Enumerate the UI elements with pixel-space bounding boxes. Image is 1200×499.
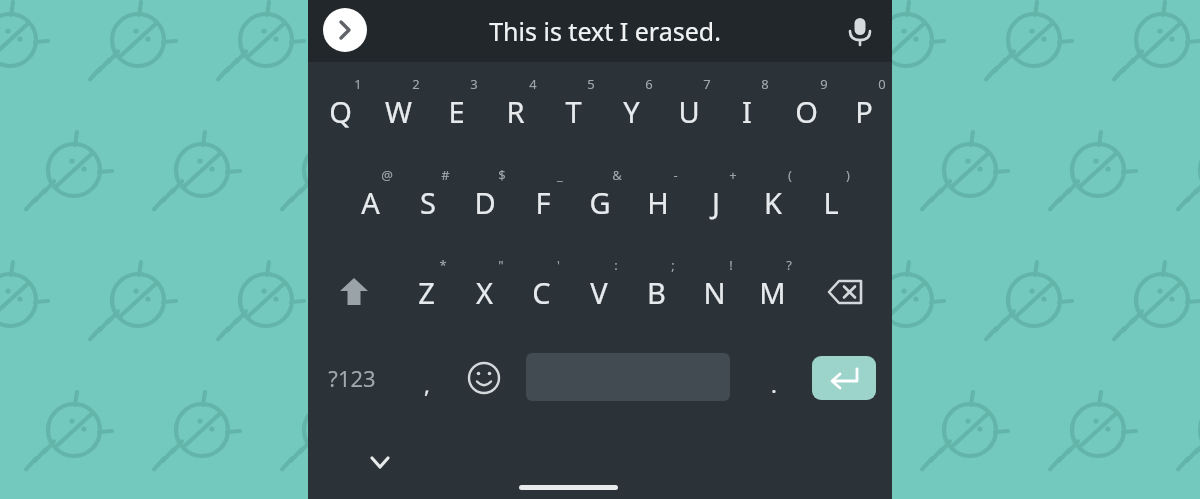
button[interactable]: L (791, 170, 871, 234)
button[interactable]: B (616, 260, 696, 324)
button[interactable]: 7 (667, 69, 747, 98)
button[interactable]: ! (691, 250, 771, 279)
staticText: L (823, 183, 839, 222)
staticText: C (532, 273, 551, 312)
staticText: A (361, 183, 380, 222)
button[interactable]: P (824, 79, 904, 143)
button[interactable]: : (576, 250, 656, 279)
staticText: + (729, 166, 737, 184)
staticText: E (448, 92, 465, 131)
button[interactable]: Expand suggestions (323, 8, 367, 52)
staticText: G (589, 183, 611, 222)
staticText: This is text I erased. (489, 14, 721, 48)
staticText: _ (557, 166, 563, 184)
staticText: 8 (761, 75, 769, 93)
button[interactable]: J (676, 170, 756, 234)
button[interactable]: Hide keyboard (358, 440, 402, 484)
button[interactable]: 3 (434, 69, 514, 98)
button[interactable]: Q (300, 79, 380, 143)
button[interactable]: 4 (493, 69, 573, 98)
button[interactable]: A (330, 170, 410, 234)
button[interactable]: ' (518, 250, 598, 279)
button[interactable]: O (766, 79, 846, 143)
button[interactable]: F (503, 170, 583, 234)
button[interactable]: Enter (812, 356, 876, 400)
button[interactable]: - (635, 160, 715, 189)
button[interactable]: U (649, 79, 729, 143)
button[interactable]: H (618, 170, 698, 234)
button[interactable]: 2 (376, 69, 456, 98)
button[interactable]: I (707, 79, 787, 143)
staticText: F (535, 183, 551, 222)
button[interactable]: 0 (842, 69, 922, 98)
staticText: ?123 (328, 363, 376, 393)
button[interactable]: R (475, 79, 555, 143)
button[interactable]: Y (591, 79, 671, 143)
button[interactable]: , (387, 360, 467, 408)
button[interactable]: C (501, 260, 581, 324)
button[interactable]: Emoji (462, 356, 506, 400)
staticText: - (673, 166, 678, 184)
button[interactable]: Voice input (838, 8, 882, 52)
button[interactable]: 1 (318, 69, 398, 98)
button[interactable]: Shift (327, 265, 381, 319)
staticText: ! (729, 256, 733, 274)
button[interactable]: " (461, 250, 541, 279)
staticText: # (441, 166, 450, 184)
button[interactable]: 5 (551, 69, 631, 98)
staticText: 2 (412, 75, 420, 93)
staticText: H (647, 183, 669, 222)
button[interactable]: & (577, 160, 657, 189)
staticText: X (476, 273, 493, 312)
button[interactable]: ?123 (312, 354, 392, 402)
staticText: N (703, 273, 726, 312)
staticText: Z (418, 273, 435, 312)
button[interactable]: + (693, 160, 773, 189)
staticText: T (565, 92, 582, 131)
button[interactable]: # (405, 160, 485, 189)
button[interactable]: ; (633, 250, 713, 279)
button[interactable]: ( (750, 160, 830, 189)
staticText: 3 (470, 75, 478, 93)
button[interactable]: ? (749, 250, 829, 279)
button[interactable]: _ (520, 160, 600, 189)
button[interactable]: V (559, 260, 639, 324)
button[interactable]: T (533, 79, 613, 143)
button[interactable]: * (403, 250, 483, 279)
button[interactable]: N (674, 260, 754, 324)
button[interactable]: 9 (784, 69, 864, 98)
button[interactable]: X (444, 260, 524, 324)
button[interactable]: W (358, 79, 438, 143)
staticText: ' (557, 256, 560, 274)
button[interactable]: D (445, 170, 525, 234)
button[interactable]: 8 (725, 69, 805, 98)
button[interactable]: @ (347, 160, 427, 189)
staticText: " (498, 256, 504, 274)
staticText: & (612, 166, 622, 184)
button[interactable]: . (734, 360, 814, 408)
staticText: 1 (354, 75, 362, 93)
staticText: ? (786, 256, 792, 274)
button[interactable]: Z (386, 260, 466, 324)
button[interactable]: G (560, 170, 640, 234)
button[interactable]: M (732, 260, 812, 324)
staticText: 5 (587, 75, 595, 93)
button[interactable]: S (388, 170, 468, 234)
button[interactable]: This is text I erased. (390, 6, 820, 56)
staticText: M (759, 273, 786, 312)
staticText: 9 (820, 75, 828, 93)
staticText: J (712, 183, 720, 222)
button[interactable]: Backspace (818, 265, 872, 319)
staticText: ) (846, 166, 850, 184)
staticText: : (614, 256, 618, 274)
button[interactable]: K (733, 170, 813, 234)
staticText: S (420, 183, 436, 222)
button[interactable]: $ (462, 160, 542, 189)
staticText: O (795, 92, 818, 131)
button[interactable]: E (416, 79, 496, 143)
button[interactable]: 6 (609, 69, 689, 98)
staticText: K (764, 183, 782, 222)
button[interactable]: ) (808, 160, 888, 189)
staticText: 6 (645, 75, 653, 93)
